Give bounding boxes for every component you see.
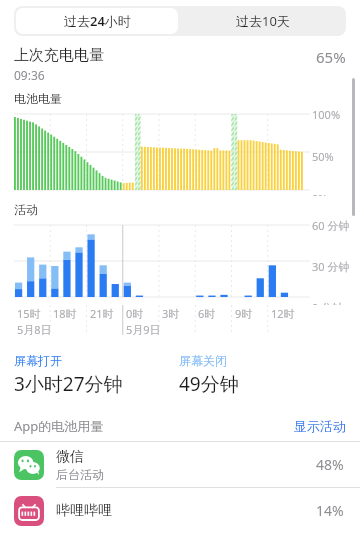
staticText: 5月9日: [126, 322, 161, 337]
button[interactable]: 显示活动: [294, 418, 346, 434]
staticText: 60 分钟: [312, 218, 350, 233]
other: bilibili app icon: [14, 496, 44, 526]
staticText: 5月8日: [17, 322, 52, 337]
staticText: 15时: [17, 306, 41, 321]
staticText: 49分钟: [179, 371, 239, 397]
staticText: 显示活动: [294, 418, 346, 434]
staticText: 30 分钟: [312, 259, 350, 274]
staticText: 微信: [56, 448, 84, 466]
staticText: 0 分钟: [312, 300, 344, 305]
staticText: 50%: [312, 149, 334, 164]
staticText: 18时: [53, 306, 77, 321]
staticText: 过去24小时: [64, 12, 131, 30]
staticText: 3小时27分钟: [14, 371, 123, 397]
staticText: 哔哩哔哩: [56, 502, 112, 520]
staticText: 09:36: [14, 67, 45, 83]
staticText: 0%: [312, 191, 328, 196]
staticText: 屏幕关闭: [179, 353, 227, 368]
staticText: 活动: [14, 202, 38, 217]
staticText: 48%: [316, 455, 344, 474]
staticText: 3时: [162, 306, 180, 321]
staticText: 后台活动: [56, 467, 104, 482]
staticText: 14%: [316, 501, 344, 520]
button[interactable]: 过去24小时: [16, 8, 178, 34]
other: WeChat app icon: [14, 450, 44, 480]
staticText: 屏幕打开: [14, 353, 62, 368]
staticText: App的电池用量: [14, 417, 294, 435]
staticText: 上次充电电量: [14, 46, 104, 65]
staticText: 100%: [312, 107, 341, 122]
button[interactable]: bilibili app icon: [0, 488, 360, 533]
staticText: 12时: [271, 306, 295, 321]
staticText: 65%: [316, 47, 346, 67]
staticText: 6时: [198, 306, 216, 321]
staticText: 9时: [235, 306, 253, 321]
button[interactable]: 过去10天: [180, 6, 346, 36]
staticText: 电池电量: [14, 91, 62, 106]
staticText: 0时: [126, 306, 144, 321]
button[interactable]: WeChat app icon: [0, 442, 360, 487]
staticText: 过去10天: [236, 12, 290, 30]
staticText: 21时: [90, 306, 114, 321]
